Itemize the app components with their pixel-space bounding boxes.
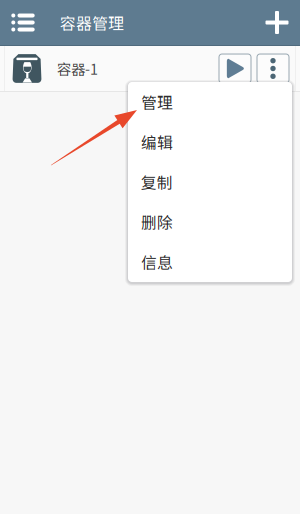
button[interactable]: More — [257, 54, 289, 83]
staticText: 删除 — [141, 211, 173, 233]
button[interactable]: 编辑 — [128, 122, 292, 162]
staticText: 信息 — [141, 251, 173, 273]
staticText: 编辑 — [141, 131, 173, 153]
staticText: 复制 — [141, 171, 173, 193]
staticText: 容器-1 — [57, 58, 98, 79]
button[interactable]: Start — [219, 54, 251, 83]
staticText: 管理 — [141, 91, 173, 113]
button[interactable]: 信息 — [128, 242, 292, 282]
button[interactable]: Menu — [0, 0, 46, 45]
button[interactable]: Add — [254, 0, 300, 45]
button[interactable]: 删除 — [128, 202, 292, 242]
button[interactable]: 复制 — [128, 162, 292, 202]
button[interactable]: 管理 — [128, 82, 292, 122]
staticText: 容器管理 — [60, 11, 124, 34]
